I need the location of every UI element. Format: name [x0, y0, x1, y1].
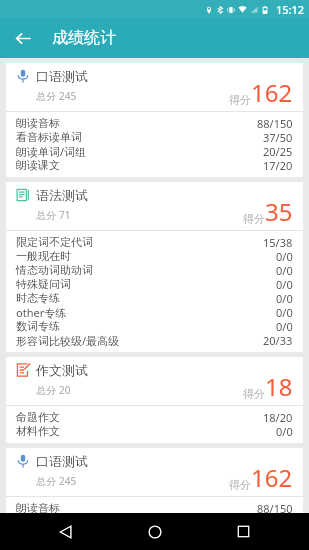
staticText: 一般现在时 — [16, 249, 71, 263]
staticText: 限定词不定代词 — [16, 235, 93, 249]
staticText: 总分 — [36, 384, 56, 397]
staticText: 0/0 — [276, 249, 293, 263]
staticText: 总分 — [36, 90, 56, 103]
staticText: 88/150 — [257, 501, 293, 513]
staticText: 37/50 — [263, 130, 293, 144]
staticText: 0/0 — [276, 291, 293, 305]
staticText: 0/0 — [276, 277, 293, 291]
staticText: 总分 — [36, 209, 56, 222]
staticText: 材料作文 — [16, 424, 60, 438]
staticText: 得分 — [243, 387, 265, 401]
staticText: 朗读音标 — [16, 501, 60, 513]
staticText: 口语测试 — [36, 453, 88, 469]
staticText: 71 — [59, 208, 71, 222]
staticText: 15:12 — [276, 2, 305, 17]
staticText: 朗读课文 — [16, 158, 60, 172]
staticText: 数词专练 — [16, 319, 60, 333]
button[interactable]: Back — [44, 513, 88, 550]
staticText: other专练 — [16, 305, 67, 319]
staticText: 朗读音标 — [16, 116, 60, 130]
staticText: 20 — [59, 383, 71, 397]
staticText: 命题作文 — [16, 410, 60, 424]
staticText: 语法测试 — [36, 187, 88, 203]
staticText: 成绩统计 — [52, 28, 116, 48]
staticText: 88/150 — [257, 116, 293, 130]
staticText: 口语测试 — [36, 68, 88, 84]
staticText: 作文测试 — [36, 362, 88, 378]
staticText: 0/0 — [276, 263, 293, 277]
staticText: 得分 — [229, 478, 251, 492]
staticText: 0/0 — [276, 319, 293, 333]
staticText: 17/20 — [263, 158, 293, 172]
staticText: 162 — [251, 76, 293, 109]
staticText: 时态专练 — [16, 291, 60, 305]
staticText: 20/33 — [263, 333, 293, 347]
staticText: 245 — [59, 474, 77, 488]
staticText: 18 — [265, 370, 293, 403]
staticText: 20/25 — [263, 144, 293, 158]
staticText: 特殊疑问词 — [16, 277, 71, 291]
staticText: 看音标读单词 — [16, 130, 82, 144]
staticText: 总分 — [36, 475, 56, 488]
staticText: 18/20 — [263, 410, 293, 424]
button[interactable]: Home — [133, 513, 177, 550]
staticText: 245 — [59, 89, 77, 103]
staticText: 朗读单词/词组 — [16, 144, 87, 158]
button[interactable]: 语法测试 — [6, 182, 303, 352]
staticText: 形容词比较级/最高级 — [16, 333, 120, 347]
staticText: 162 — [251, 461, 293, 494]
staticText: 得分 — [229, 93, 251, 107]
staticText: 得分 — [243, 212, 265, 226]
staticText: 0/0 — [276, 305, 293, 319]
button[interactable]: Back — [8, 23, 38, 53]
staticText: 35 — [265, 195, 293, 228]
button[interactable]: Recent apps — [221, 513, 265, 550]
button[interactable]: 口语测试 — [6, 63, 303, 177]
staticText: 情态动词助动词 — [16, 263, 93, 277]
button[interactable]: 口语测试 — [6, 448, 303, 513]
staticText: 15/38 — [263, 235, 293, 249]
button[interactable]: 作文测试 — [6, 357, 303, 443]
staticText: 0/0 — [276, 424, 293, 438]
